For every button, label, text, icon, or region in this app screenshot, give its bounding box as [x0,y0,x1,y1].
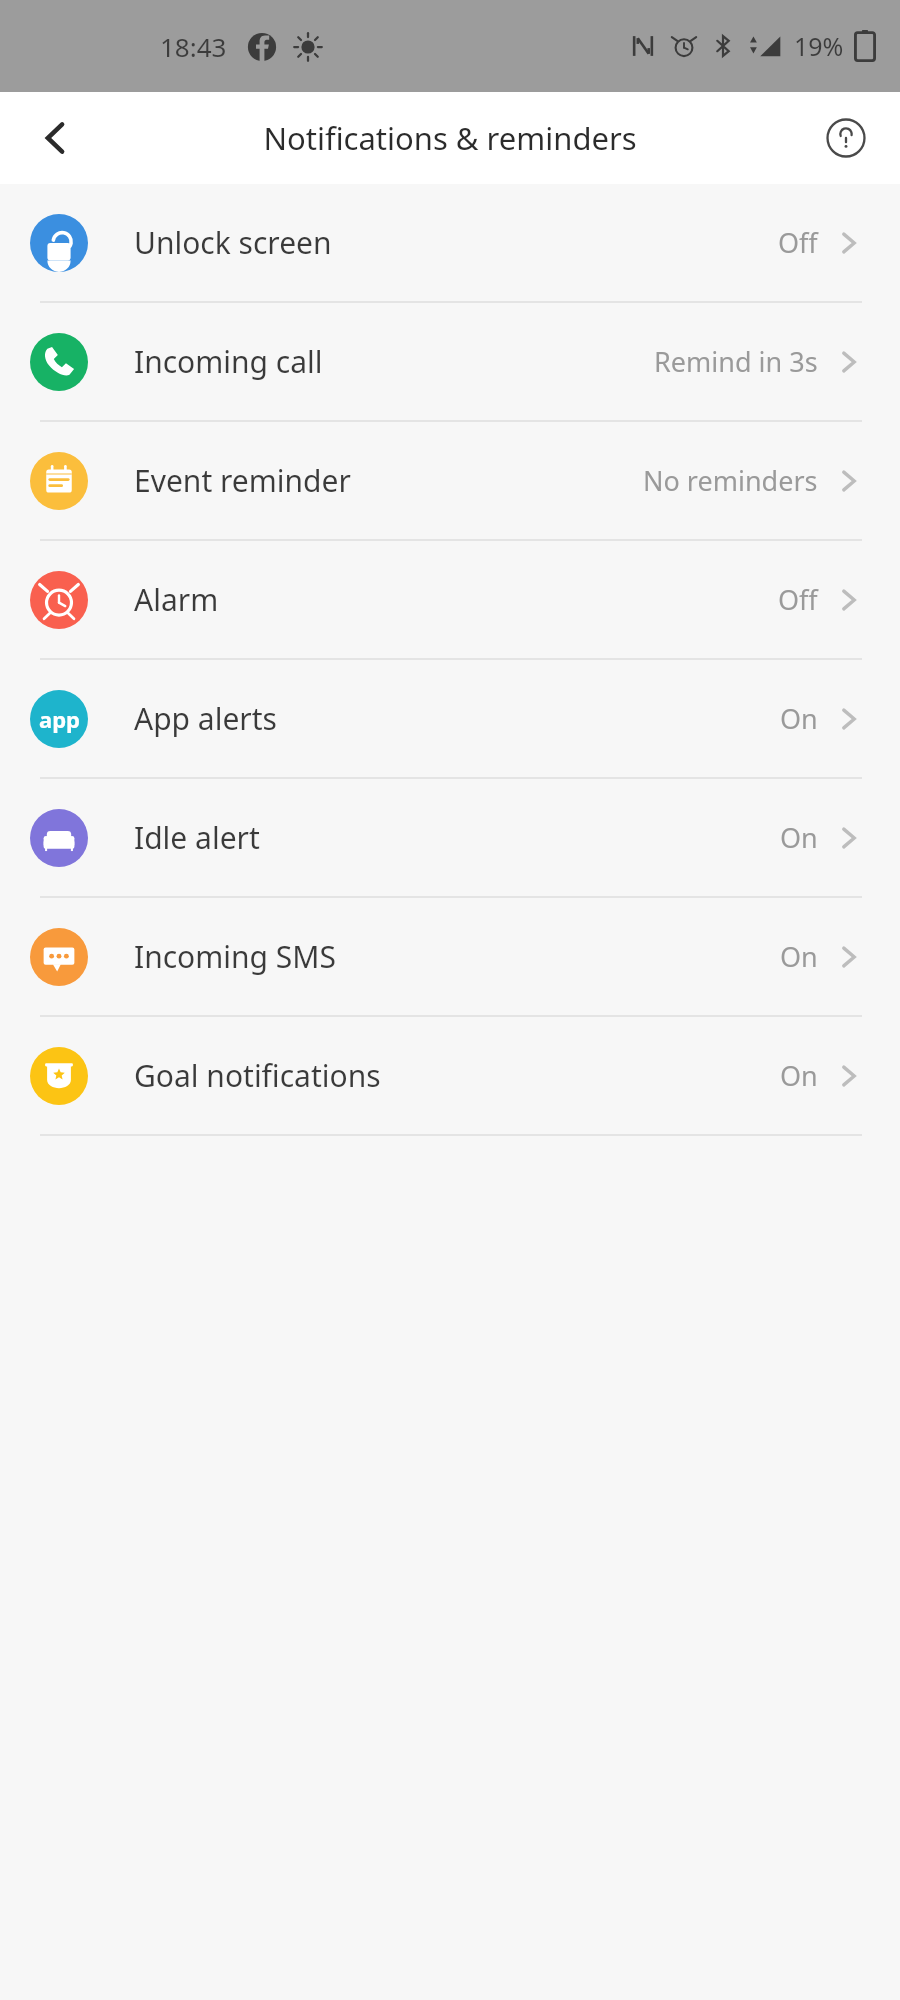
staticText: 18:43 [160,29,227,64]
button[interactable]: Goal notifications [0,1017,900,1136]
staticText: Off [778,581,818,618]
button[interactable]: Back [20,102,92,174]
button[interactable]: Help [810,102,882,174]
button[interactable]: Event reminder [0,422,900,541]
staticText: Notifications & reminders [263,117,637,159]
button[interactable]: Incoming SMS [0,898,900,1017]
staticText: On [780,700,818,737]
button[interactable]: Unlock screen [0,184,900,303]
staticText: On [780,819,818,856]
button[interactable]: Incoming call [0,303,900,422]
staticText: Off [778,224,818,261]
staticText: Unlock screen [134,222,332,263]
staticText: 19% [794,29,844,63]
staticText: Alarm [134,579,219,620]
staticText: On [780,938,818,975]
staticText: No reminders [643,462,818,499]
staticText: Event reminder [134,460,351,501]
staticText: Incoming call [134,341,323,382]
staticText: app [39,704,80,734]
staticText: Remind in 3s [654,343,818,380]
staticText: On [780,1057,818,1094]
button[interactable]: Idle alert [0,779,900,898]
button[interactable]: Alarm [0,541,900,660]
staticText: Idle alert [134,817,260,858]
staticText: App alerts [134,698,277,739]
button[interactable]: app [0,660,900,779]
staticText: Goal notifications [134,1055,381,1096]
staticText: Incoming SMS [134,936,336,977]
